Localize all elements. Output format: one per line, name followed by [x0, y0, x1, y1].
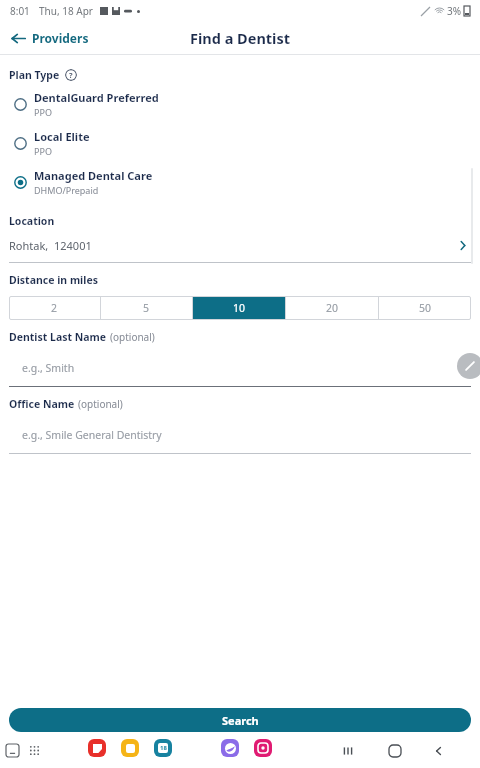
button[interactable]: 5 [101, 296, 192, 320]
staticText: PPO [34, 106, 52, 118]
button[interactable]: Recent apps [339, 742, 357, 760]
button[interactable]: All apps [26, 742, 42, 758]
button[interactable]: Home [386, 742, 404, 760]
staticText: DHMO/Prepaid [34, 184, 99, 196]
button[interactable]: Files [121, 739, 139, 757]
staticText: Plan Type [9, 68, 60, 82]
staticText: Providers [32, 30, 89, 46]
button[interactable]: Recents [4, 742, 20, 758]
staticText: Managed Dental Care [34, 168, 153, 183]
staticText: Dentist Last Name [9, 330, 107, 344]
staticText: Thu, 18 Apr [39, 4, 93, 18]
staticText: PPO [34, 145, 52, 157]
staticText: 2 [51, 301, 58, 315]
staticText: 50 [419, 301, 432, 315]
staticText: 5 [143, 301, 150, 315]
button[interactable]: 20 [286, 296, 378, 320]
button[interactable]: Managed Dental Care [9, 168, 471, 196]
staticText: 3% [447, 4, 462, 18]
staticText: DentalGuard Preferred [34, 90, 159, 105]
staticText: (optional) [78, 397, 123, 411]
button[interactable]: Edit [457, 353, 480, 379]
staticText: Office Name [9, 397, 75, 411]
staticText: e.g., Smile General Dentistry [22, 428, 162, 442]
button[interactable]: Providers [8, 27, 92, 49]
staticText: Rohtak, 124001 [9, 238, 92, 253]
button[interactable]: Search [9, 708, 471, 732]
staticText: Local Elite [34, 129, 90, 144]
button[interactable]: Local Elite [9, 129, 471, 157]
button[interactable]: DentalGuard Preferred [9, 90, 471, 118]
button[interactable]: Plan type help [65, 69, 77, 81]
button[interactable]: Rohtak, 124001 [9, 228, 471, 262]
button[interactable]: Back [430, 742, 448, 760]
button[interactable]: 50 [379, 296, 471, 320]
button[interactable]: 10 [193, 296, 285, 320]
staticText: (optional) [110, 330, 155, 344]
button[interactable]: 2 [9, 296, 100, 320]
staticText: 18 [160, 744, 167, 752]
staticText: ? [69, 70, 73, 80]
button[interactable]: Notes [88, 739, 106, 757]
button[interactable]: Instagram [254, 739, 272, 757]
staticText: Location [9, 214, 55, 228]
staticText: Distance in miles [9, 273, 98, 287]
staticText: 20 [326, 301, 339, 315]
staticText: Search [222, 713, 259, 728]
staticText: e.g., Smith [22, 361, 75, 375]
staticText: 10 [233, 301, 246, 315]
staticText: 8:01 [10, 4, 30, 18]
button[interactable]: Internet [221, 739, 239, 757]
staticText: Find a Dentist [190, 28, 291, 48]
button[interactable]: Calendar [154, 739, 172, 757]
